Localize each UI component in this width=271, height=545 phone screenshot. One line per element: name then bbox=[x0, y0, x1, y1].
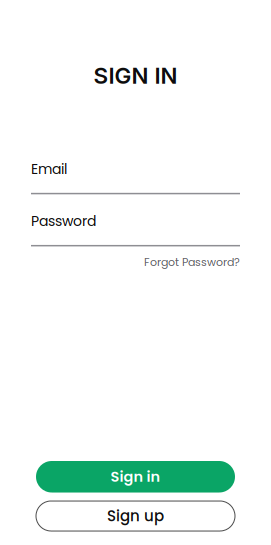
staticText: Sign in bbox=[110, 467, 160, 487]
button[interactable]: Forgot Password? bbox=[144, 254, 240, 270]
staticText: SIGN IN bbox=[93, 62, 177, 89]
staticText: Forgot Password? bbox=[144, 254, 240, 270]
button[interactable]: Sign up bbox=[36, 501, 235, 531]
button[interactable]: Email bbox=[31, 159, 240, 194]
button[interactable]: Sign in bbox=[36, 461, 235, 492]
staticText: Sign up bbox=[107, 505, 164, 526]
button[interactable]: Password bbox=[31, 211, 240, 246]
staticText: Email bbox=[31, 159, 67, 179]
staticText: Password bbox=[31, 211, 96, 231]
